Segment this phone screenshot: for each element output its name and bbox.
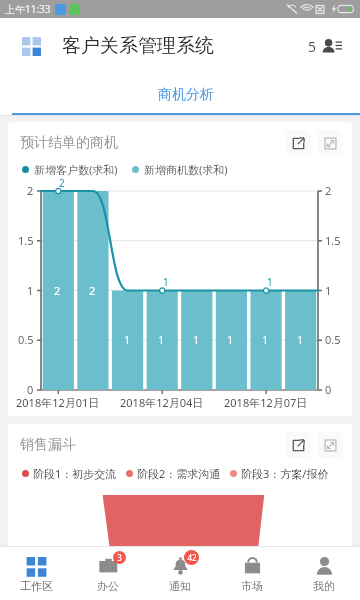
staticText: 1: [227, 332, 234, 347]
staticText: 2018年12月01日: [16, 395, 100, 410]
staticText: 2: [89, 283, 96, 298]
staticText: 我的: [313, 579, 335, 593]
staticText: 1.5: [18, 233, 34, 248]
staticText: 3: [117, 552, 122, 563]
staticText: 销售漏斗: [20, 436, 76, 454]
staticText: 商机分析: [158, 86, 214, 104]
staticText: 2018年12月07日: [224, 395, 308, 410]
button[interactable]: Open in new: [285, 130, 311, 156]
staticText: 办公: [97, 579, 119, 593]
staticText: 1: [158, 332, 165, 347]
staticText: 1: [267, 275, 273, 289]
button[interactable]: Fullscreen: [317, 432, 343, 458]
staticText: 0.5: [18, 332, 34, 347]
staticText: 0: [27, 382, 34, 397]
staticText: 2018年12月04日: [120, 395, 204, 410]
button[interactable]: Fullscreen: [317, 130, 343, 156]
button[interactable]: 42: [144, 546, 216, 600]
staticText: 2: [54, 283, 61, 298]
staticText: 阶段1：初步交流: [33, 466, 117, 481]
staticText: 42: [187, 552, 197, 563]
button[interactable]: 商机分析: [12, 74, 360, 116]
staticText: 2: [59, 176, 65, 190]
staticText: 1: [124, 332, 131, 347]
button[interactable]: Open in new: [285, 432, 311, 458]
staticText: 阶段3：方案/报价: [241, 466, 329, 481]
staticText: 预计结单的商机: [20, 134, 118, 152]
staticText: 0.5: [325, 332, 341, 347]
staticText: 工作区: [20, 579, 53, 593]
staticText: 新增商机数(求和): [144, 162, 228, 177]
staticText: 客户关系管理系统: [62, 34, 214, 58]
staticText: 市场: [241, 579, 263, 593]
staticText: 1.5: [325, 233, 341, 248]
staticText: 2: [325, 183, 332, 198]
button[interactable]: 我的: [288, 546, 360, 600]
staticText: 5: [308, 37, 317, 56]
button[interactable]: 市场: [216, 546, 288, 600]
button[interactable]: Menu: [14, 29, 48, 63]
staticText: 2: [27, 183, 34, 198]
button[interactable]: 预计结单的商机: [8, 122, 352, 416]
staticText: 1: [193, 332, 200, 347]
staticText: 1: [27, 283, 34, 298]
staticText: 1: [297, 332, 304, 347]
staticText: 新增客户数(求和): [34, 162, 118, 177]
button[interactable]: 工作区: [0, 546, 72, 600]
staticText: 1: [325, 283, 332, 298]
button[interactable]: 销售漏斗: [8, 424, 352, 554]
staticText: 上午11:33: [5, 2, 51, 16]
button[interactable]: Contacts 5: [304, 31, 346, 62]
staticText: 1: [163, 275, 169, 289]
staticText: 通知: [169, 579, 191, 593]
staticText: 阶段2：需求沟通: [137, 466, 221, 481]
staticText: 0: [325, 382, 332, 397]
button[interactable]: 3: [72, 546, 144, 600]
staticText: 1: [262, 332, 269, 347]
